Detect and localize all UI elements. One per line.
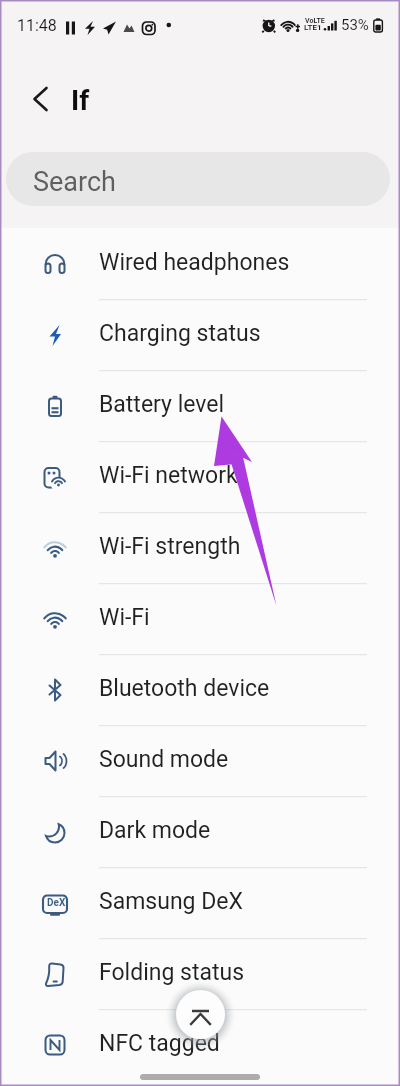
- staticText: DeX: [47, 897, 66, 909]
- staticText: 11:48: [17, 16, 57, 35]
- button[interactable]: Wired headphones: [0, 228, 400, 299]
- button[interactable]: DeX: [0, 867, 400, 938]
- staticText: Sound mode: [99, 746, 229, 773]
- button[interactable]: Scroll to top: [176, 990, 225, 1039]
- staticText: Dark mode: [99, 817, 211, 844]
- button[interactable]: Charging status: [0, 299, 400, 370]
- staticText: Battery level: [99, 391, 225, 418]
- button[interactable]: Wi-Fi strength: [0, 512, 400, 583]
- staticText: If: [71, 84, 90, 117]
- staticText: Wi-Fi strength: [99, 533, 241, 560]
- button[interactable]: Sound mode: [0, 725, 400, 796]
- staticText: NFC tagged: [99, 1030, 220, 1057]
- button[interactable]: Bluetooth device: [0, 654, 400, 725]
- button[interactable]: Dark mode: [0, 796, 400, 867]
- button[interactable]: Search: [6, 152, 390, 206]
- button[interactable]: Wi-Fi network: [0, 441, 400, 512]
- staticText: 53%: [341, 16, 369, 34]
- staticText: Search: [33, 166, 116, 198]
- staticText: Wired headphones: [99, 249, 290, 276]
- staticText: Bluetooth device: [99, 675, 270, 702]
- staticText: Charging status: [99, 320, 261, 347]
- button[interactable]: NFC tagged: [0, 1009, 400, 1080]
- staticText: Wi-Fi: [99, 604, 150, 631]
- staticText: Samsung DeX: [99, 888, 243, 915]
- staticText: LTE1: [304, 23, 322, 32]
- button[interactable]: Battery level: [0, 370, 400, 441]
- button[interactable]: Folding status: [0, 938, 400, 1009]
- button[interactable]: Wi-Fi: [0, 583, 400, 654]
- staticText: Folding status: [99, 959, 245, 986]
- staticText: VoLTE: [305, 17, 325, 25]
- staticText: Wi-Fi network: [99, 462, 238, 489]
- button[interactable]: Back: [21, 81, 57, 117]
